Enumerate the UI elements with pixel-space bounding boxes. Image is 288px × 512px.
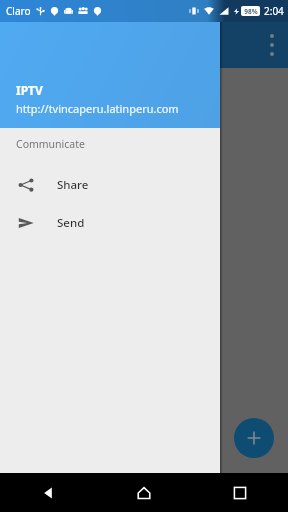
staticText: Share xyxy=(57,177,89,193)
button[interactable]: Back xyxy=(0,473,96,512)
button[interactable]: Home xyxy=(96,473,192,512)
staticText: 2:04 xyxy=(264,4,284,18)
staticText: 98% xyxy=(244,7,258,16)
staticText: IPTV xyxy=(16,82,43,98)
button[interactable]: Share xyxy=(0,166,220,204)
button[interactable]: Send xyxy=(0,204,220,242)
button[interactable]: Add xyxy=(234,418,274,458)
staticText: Claro xyxy=(6,4,31,18)
button[interactable]: Recent apps xyxy=(192,473,288,512)
staticText: http://tvincaperu.latinperu.com xyxy=(16,101,179,116)
staticText: Communicate xyxy=(16,137,85,151)
button[interactable]: More options xyxy=(262,28,282,62)
staticText: Send xyxy=(57,215,85,231)
